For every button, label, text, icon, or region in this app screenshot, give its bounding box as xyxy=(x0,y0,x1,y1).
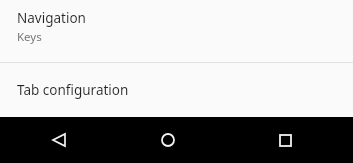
button[interactable]: Back xyxy=(0,117,118,163)
staticText: Keys xyxy=(17,29,42,45)
button[interactable]: Navigation xyxy=(0,0,353,62)
button[interactable]: Tab configuration xyxy=(0,63,353,117)
staticText: Navigation xyxy=(17,9,86,27)
button[interactable]: Recent apps xyxy=(217,117,353,163)
button[interactable]: Home xyxy=(118,117,217,163)
staticText: Tab configuration xyxy=(17,81,129,99)
